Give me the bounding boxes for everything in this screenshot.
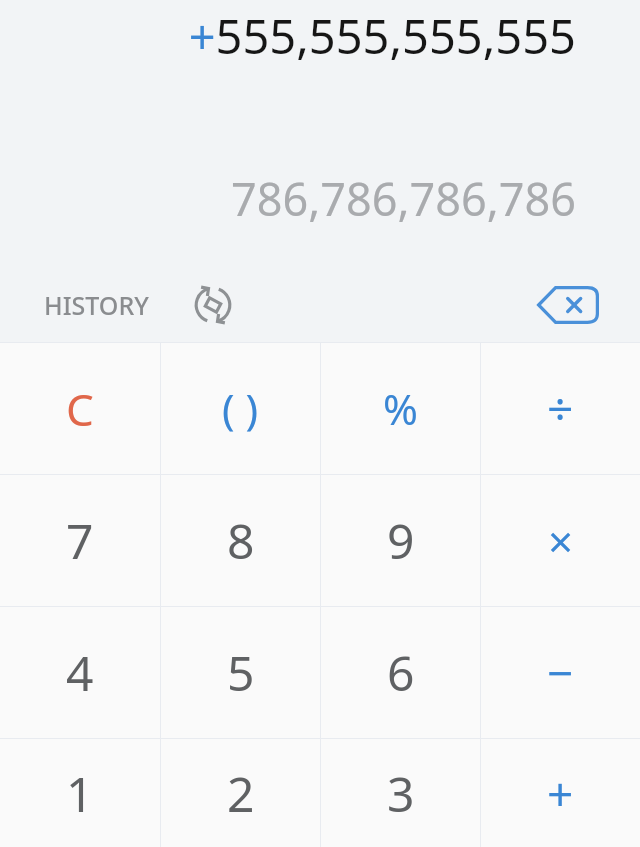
- button[interactable]: 6: [321, 607, 480, 738]
- button[interactable]: 9: [321, 475, 480, 606]
- button[interactable]: 1: [0, 739, 160, 847]
- button[interactable]: C: [0, 343, 160, 474]
- staticText: 1: [66, 761, 94, 826]
- staticText: ÷: [547, 377, 574, 440]
- staticText: 9: [387, 508, 415, 573]
- button[interactable]: Convert units: [185, 277, 241, 333]
- staticText: 3: [387, 761, 415, 826]
- button[interactable]: 5: [161, 607, 320, 738]
- staticText: 2: [227, 761, 255, 826]
- button[interactable]: 2: [161, 739, 320, 847]
- button[interactable]: 3: [321, 739, 480, 847]
- button[interactable]: +: [481, 739, 640, 847]
- staticText: 7: [66, 508, 94, 573]
- staticText: 786,786,786,786: [0, 168, 576, 229]
- button[interactable]: ÷: [481, 343, 640, 474]
- staticText: ×: [548, 511, 574, 571]
- button[interactable]: 8: [161, 475, 320, 606]
- staticText: 8: [227, 508, 255, 573]
- staticText: −: [547, 641, 574, 704]
- staticText: %: [383, 380, 418, 437]
- staticText: 6: [387, 640, 415, 705]
- staticText: 5: [227, 640, 255, 705]
- staticText: +555,555,555,555: [0, 4, 576, 68]
- staticText: ( ): [222, 380, 259, 437]
- button[interactable]: Backspace: [532, 277, 604, 333]
- button[interactable]: 4: [0, 607, 160, 738]
- button[interactable]: ( ): [161, 343, 320, 474]
- button[interactable]: −: [481, 607, 640, 738]
- button[interactable]: ×: [481, 475, 640, 606]
- staticText: C: [66, 379, 94, 439]
- button[interactable]: 7: [0, 475, 160, 606]
- staticText: 4: [66, 640, 94, 705]
- staticText: HISTORY: [44, 288, 149, 322]
- button[interactable]: %: [321, 343, 480, 474]
- staticText: +: [547, 762, 574, 825]
- button[interactable]: HISTORY: [30, 278, 163, 332]
